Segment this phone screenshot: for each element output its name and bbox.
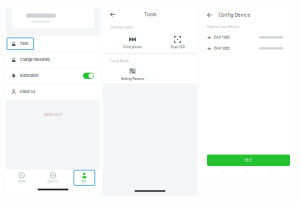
button[interactable]: Home	[6, 169, 37, 186]
staticText: Setting Params	[120, 77, 144, 81]
button[interactable]: Find phone	[110, 36, 155, 49]
staticText: Change Password	[20, 57, 50, 62]
button[interactable]: Change Password	[6, 52, 100, 67]
button[interactable]: Back	[206, 11, 214, 19]
staticText: Find phone	[123, 45, 141, 49]
staticText: EAP 2001	[214, 46, 230, 51]
staticText: About Us	[20, 89, 36, 94]
staticText: Config Device	[219, 12, 251, 18]
staticText: Scan QR	[170, 45, 184, 49]
button[interactable]: Device	[37, 169, 69, 186]
button[interactable]: SIGN OUT	[6, 110, 100, 118]
staticText: Notification	[20, 73, 39, 78]
button[interactable]: About Us	[6, 84, 100, 99]
staticText: Device	[47, 180, 58, 183]
staticText: Common tools	[110, 25, 133, 29]
button[interactable]: EAP 2001	[200, 43, 294, 54]
staticText: Tools	[144, 12, 156, 17]
staticText: SIGN OUT	[44, 112, 62, 117]
staticText: Me	[82, 180, 87, 183]
staticText: Local Mode	[110, 59, 129, 63]
button[interactable]: Tools	[6, 36, 100, 51]
staticText: Choose your Device	[207, 25, 239, 29]
button[interactable]: Notification	[6, 68, 100, 83]
button[interactable]: EAP 1001	[200, 32, 294, 43]
button[interactable]: NEXT	[207, 154, 290, 166]
button[interactable]: Scan QR	[155, 36, 200, 49]
button[interactable]: Back	[108, 10, 118, 19]
button[interactable]: Me	[69, 169, 100, 186]
staticText: EAP 1001	[214, 35, 230, 40]
button[interactable]: Setting Params	[110, 67, 155, 81]
staticText: NEXT	[244, 158, 252, 162]
staticText: Tools	[20, 41, 29, 46]
staticText: Home	[18, 180, 26, 183]
